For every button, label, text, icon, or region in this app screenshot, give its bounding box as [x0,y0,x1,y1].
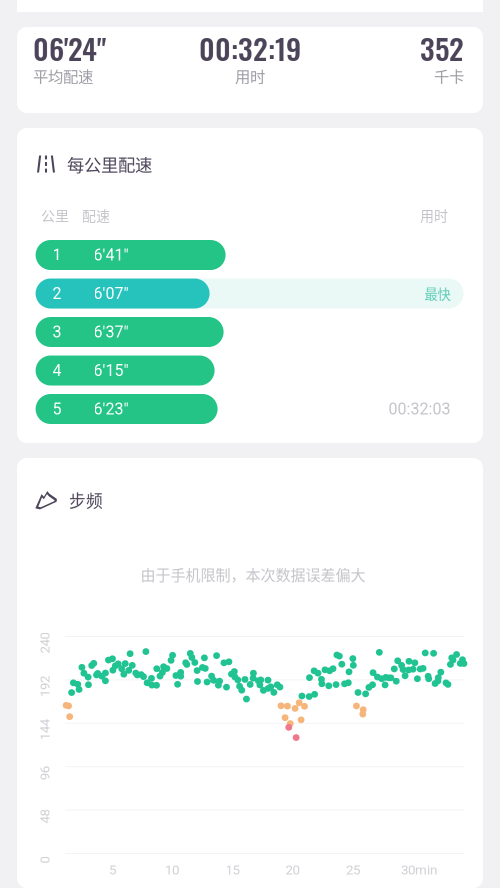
staticText: 240 [34,635,55,651]
staticText: 6'23" [94,400,129,418]
button[interactable]: 3 [36,317,464,347]
staticText: 20 [285,862,299,878]
staticText: 144 [34,722,55,738]
button[interactable]: 4 [36,355,464,385]
button[interactable]: 1 [36,240,464,270]
staticText: 25 [346,862,360,878]
staticText: 48 [38,809,52,824]
staticText: 00:32:19 [199,26,301,69]
staticText: 10 [165,862,179,878]
staticText: 每公里配速 [67,151,152,177]
staticText: 由于手机限制，本次数据误差偏大 [140,563,365,585]
staticText: 192 [34,679,55,694]
staticText: 352 [420,26,464,69]
staticText: 配速 [82,205,110,225]
staticText: 2 [53,284,62,303]
button[interactable]: 2 [36,278,464,308]
staticText: 06'24" [33,26,106,69]
staticText: 1 [53,246,62,264]
staticText: 平均配速 [33,64,93,87]
staticText: 步频 [69,488,103,512]
staticText: 30min [401,862,437,878]
staticText: 15 [225,862,239,878]
staticText: 4 [53,361,62,380]
staticText: 3 [53,323,62,341]
staticText: 5 [53,400,62,418]
staticText: 00:32:03 [389,400,451,418]
staticText: 0 [41,852,48,868]
staticText: 公里 [41,205,69,225]
staticText: 用时 [235,64,265,87]
staticText: 6'41" [94,246,129,264]
staticText: 6'15" [94,361,129,380]
staticText: 6'37" [94,323,129,341]
staticText: 6'07" [94,284,129,303]
button[interactable]: 5 [36,394,464,424]
staticText: 用时 [420,205,448,225]
staticText: 5 [109,862,116,878]
staticText: 96 [38,765,52,781]
staticText: 千卡 [434,64,464,87]
staticText: 最快 [425,284,451,303]
